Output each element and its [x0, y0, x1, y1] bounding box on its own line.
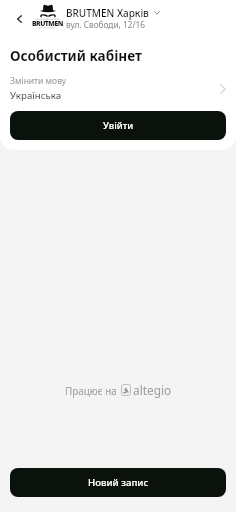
- button[interactable]: Змінити мову: [0, 72, 236, 104]
- staticText: Українська: [10, 89, 62, 102]
- staticText: BRUTMEN: [32, 19, 63, 28]
- button[interactable]: Back: [5, 5, 33, 33]
- staticText: Змінити мову: [10, 75, 67, 87]
- staticText: BRUTMEN Харків: [66, 6, 149, 20]
- staticText: Особистий кабінет: [10, 46, 142, 65]
- staticText: вул. Свободи, 12/16: [66, 19, 146, 30]
- staticText: altegio: [133, 382, 172, 398]
- staticText: Новий запис: [88, 476, 149, 489]
- staticText: Увійти: [103, 119, 134, 132]
- button[interactable]: Увійти: [10, 111, 226, 140]
- button[interactable]: Новий запис: [10, 468, 226, 497]
- button[interactable]: Change branch: [151, 7, 163, 19]
- staticText: Працює на: [65, 384, 117, 397]
